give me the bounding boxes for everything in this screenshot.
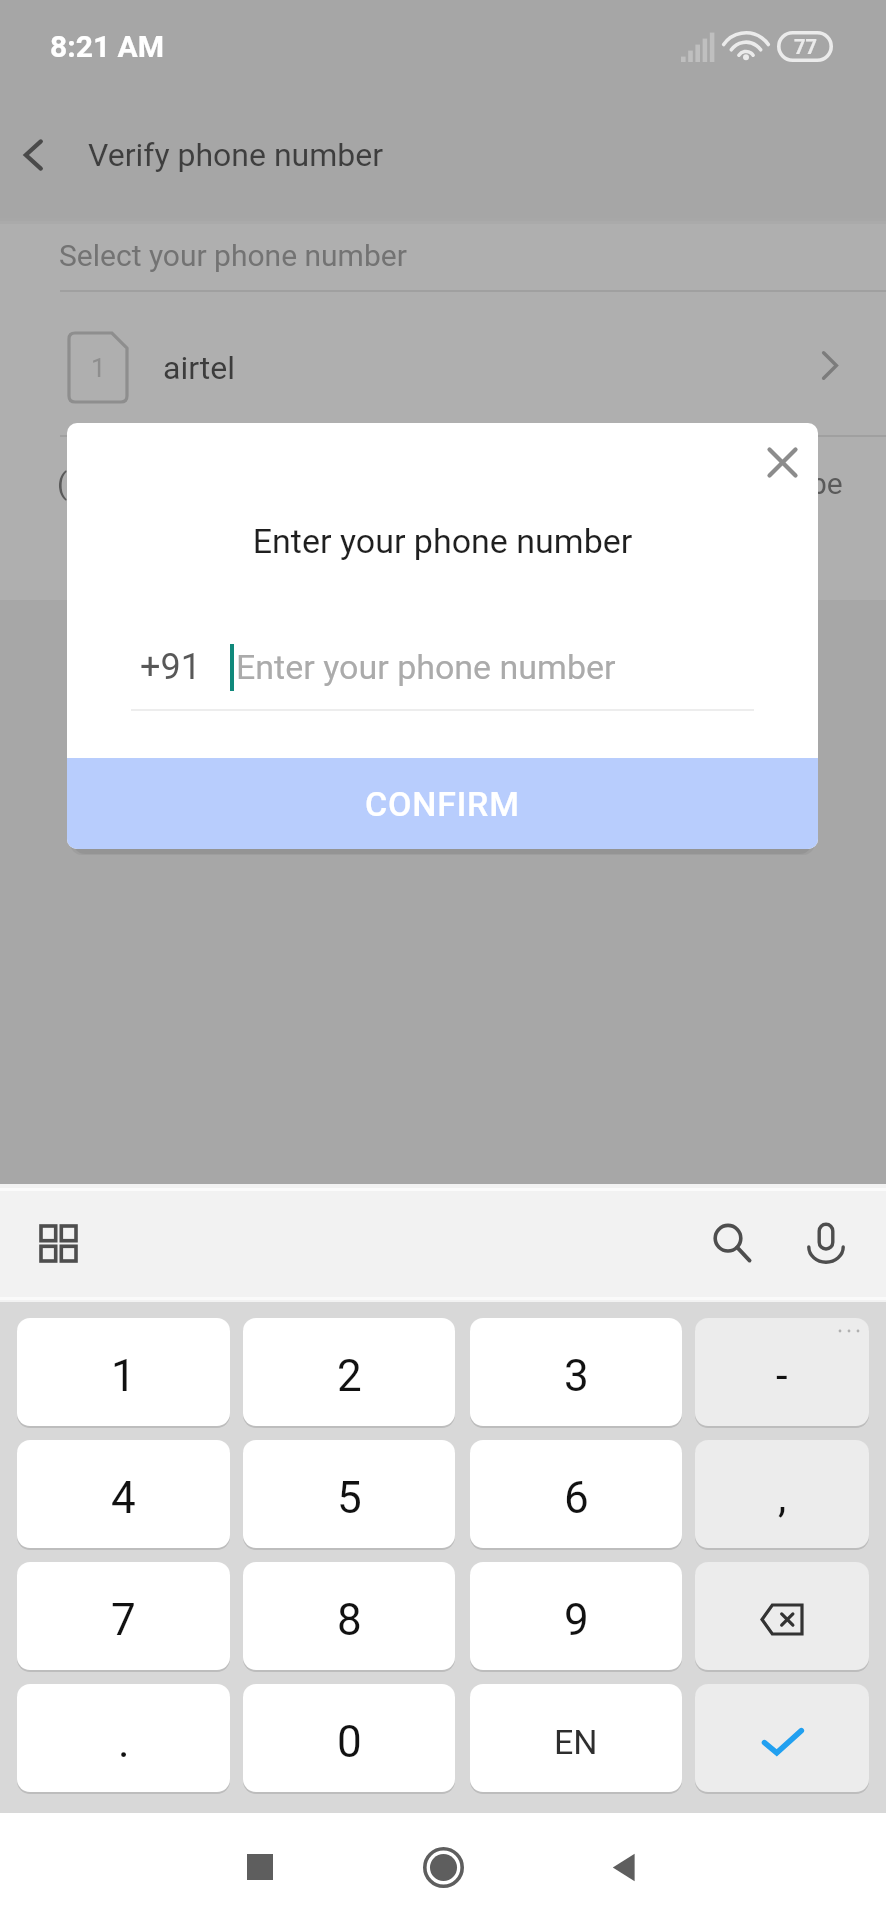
staticText: .	[118, 1716, 130, 1768]
button[interactable]: EN	[470, 1684, 682, 1792]
staticText: 5	[337, 1472, 362, 1524]
button[interactable]: 1	[0, 310, 886, 425]
staticText: 3	[564, 1350, 589, 1402]
button[interactable]: 3	[470, 1318, 682, 1426]
button[interactable]: 5	[243, 1440, 455, 1548]
staticText: 8	[337, 1594, 362, 1646]
button[interactable]: 9	[470, 1562, 682, 1670]
staticText: CONFIRM	[365, 784, 520, 824]
staticText: Enter your phone number	[67, 521, 818, 561]
staticText: airtel	[163, 349, 236, 387]
button[interactable]	[695, 1684, 869, 1792]
staticText: 1	[111, 1350, 136, 1402]
button[interactable]: 2	[243, 1318, 455, 1426]
button[interactable]: 8	[243, 1562, 455, 1670]
button[interactable]: .	[17, 1684, 230, 1792]
button[interactable]: Recents	[222, 1829, 298, 1905]
button[interactable]: Home	[405, 1829, 481, 1905]
staticText: EN	[554, 1722, 598, 1762]
button[interactable]: 6	[470, 1440, 682, 1548]
button[interactable]: Back	[0, 109, 68, 201]
button[interactable]: 0	[243, 1684, 455, 1792]
button[interactable]: Voice input	[790, 1207, 862, 1279]
staticText: 8:21 AM	[50, 29, 165, 64]
button[interactable]: -	[695, 1318, 869, 1426]
staticText: ,	[778, 1473, 787, 1522]
staticText: be	[810, 466, 843, 501]
staticText: 7	[111, 1594, 136, 1646]
staticText: 2	[337, 1350, 362, 1402]
staticText: (Enter the phone number you want to be	[57, 466, 589, 501]
button[interactable]: 1	[17, 1318, 230, 1426]
button[interactable]: Back	[586, 1829, 662, 1905]
button[interactable]: Close	[749, 429, 815, 495]
staticText: 9	[564, 1594, 589, 1646]
staticText: Select your phone number	[59, 238, 407, 273]
button[interactable]	[695, 1562, 869, 1670]
staticText: 1	[91, 353, 106, 383]
button[interactable]: Keyboard layouts	[24, 1209, 92, 1277]
button[interactable]: ,	[695, 1440, 869, 1548]
button[interactable]: Search	[696, 1207, 768, 1279]
staticText: -	[776, 1351, 788, 1400]
staticText: 4	[111, 1472, 136, 1524]
button[interactable]: 7	[17, 1562, 230, 1670]
button[interactable]: 4	[17, 1440, 230, 1548]
staticText: 0	[337, 1716, 362, 1768]
button[interactable]: CONFIRM	[67, 758, 818, 849]
staticText: Verify phone number	[88, 136, 384, 174]
staticText: 77	[794, 35, 817, 58]
staticText: 6	[564, 1472, 589, 1524]
staticText: Enter your phone number	[236, 647, 616, 687]
staticText: +91	[140, 646, 201, 688]
